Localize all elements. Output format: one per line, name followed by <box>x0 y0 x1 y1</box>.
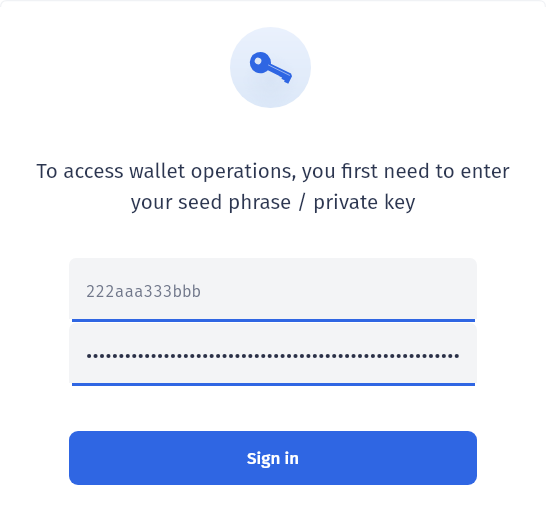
button[interactable]: Private key <box>69 323 477 386</box>
button[interactable]: Sign in <box>69 431 477 485</box>
other: Key <box>230 27 311 108</box>
staticText: Sign in <box>247 448 300 468</box>
staticText: 222aaa333bbb <box>86 282 202 301</box>
button[interactable]: 222aaa333bbb <box>69 258 477 322</box>
staticText: To access wallet operations, you first n… <box>16 159 530 214</box>
